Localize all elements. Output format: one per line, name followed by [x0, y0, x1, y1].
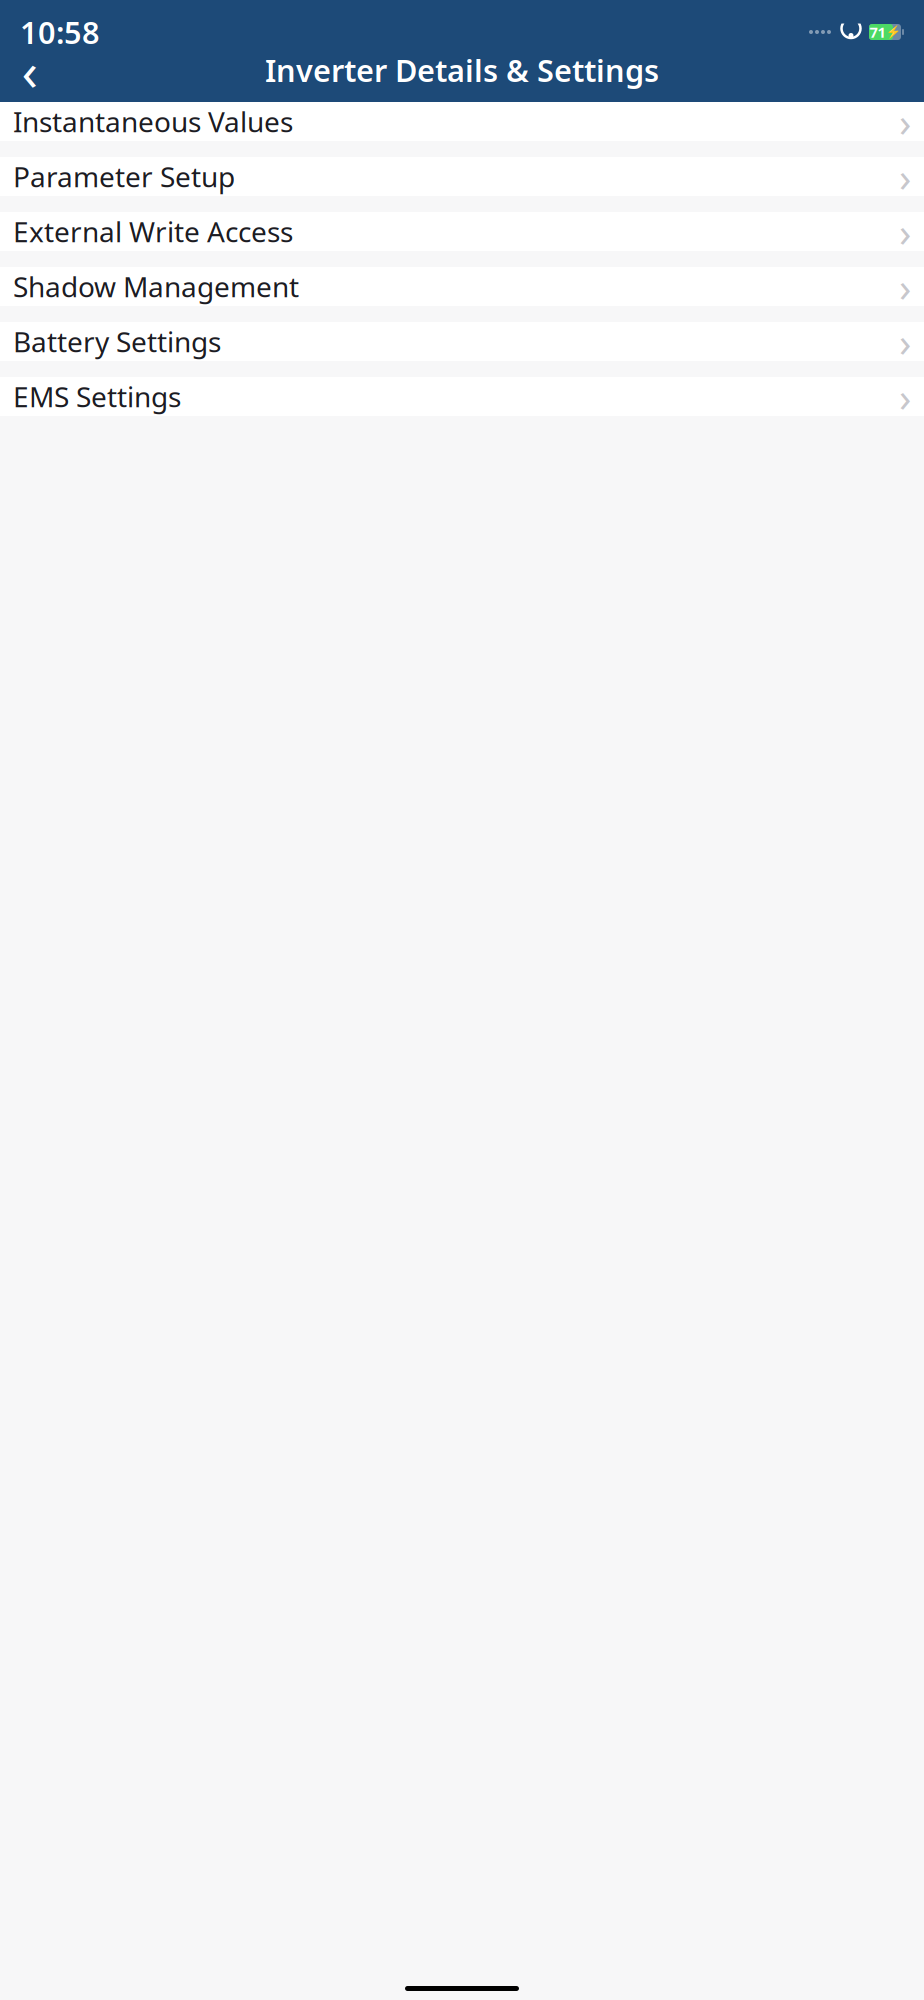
button[interactable]: Instantaneous Values: [0, 102, 924, 141]
button[interactable]: Shadow Management: [0, 267, 924, 306]
staticText: ›: [899, 315, 911, 368]
button[interactable]: External Write Access: [0, 212, 924, 251]
staticText: ›: [899, 95, 911, 148]
staticText: EMS Settings: [13, 378, 181, 415]
staticText: 10:58: [20, 12, 100, 52]
button[interactable]: EMS Settings: [0, 377, 924, 416]
staticText: External Write Access: [13, 213, 293, 250]
button[interactable]: Parameter Setup: [0, 157, 924, 196]
staticText: Instantaneous Values: [13, 103, 293, 140]
staticText: ⚡: [885, 25, 900, 39]
staticText: ›: [899, 260, 911, 313]
button[interactable]: Back: [8, 48, 52, 92]
staticText: ‹: [21, 35, 38, 105]
staticText: ›: [899, 205, 911, 258]
staticText: Inverter Details & Settings: [265, 50, 659, 90]
staticText: Battery Settings: [13, 323, 221, 360]
button[interactable]: Battery Settings: [0, 322, 924, 361]
staticText: Shadow Management: [13, 268, 299, 305]
staticText: ›: [899, 370, 911, 423]
staticText: Parameter Setup: [13, 158, 235, 195]
staticText: ›: [899, 150, 911, 203]
staticText: 71: [869, 22, 885, 42]
